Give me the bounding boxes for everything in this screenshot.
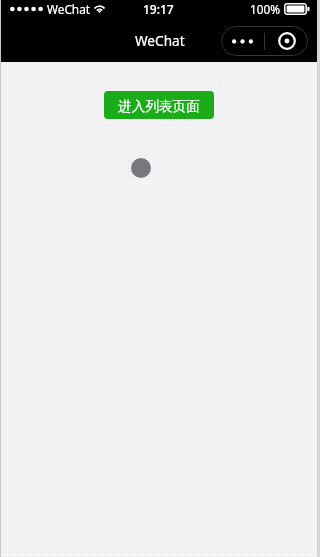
button[interactable]: More options [221, 26, 264, 56]
button[interactable]: Close mini program [265, 26, 308, 56]
staticText: 100% [250, 1, 281, 17]
staticText: WeChat [47, 1, 91, 17]
button[interactable]: 进入列表页面 [104, 91, 214, 119]
staticText: WeChat [135, 31, 185, 50]
staticText: 19:17 [143, 1, 174, 17]
staticText: 进入列表页面 [118, 98, 200, 115]
